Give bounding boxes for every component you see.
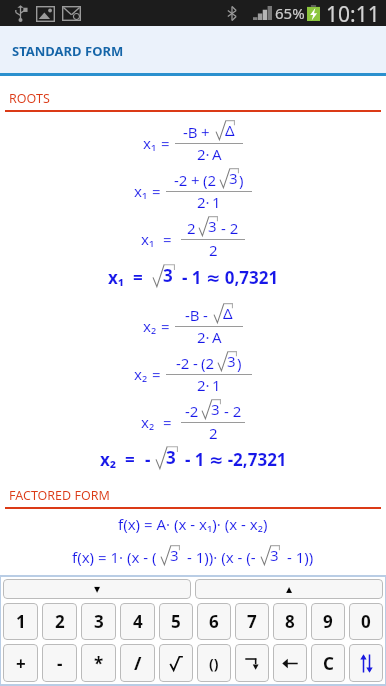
staticText: -2 [174,170,188,190]
staticText: -B [185,305,200,325]
staticText: 8 [285,610,295,633]
staticText: 3 [229,168,238,188]
staticText: 2 [55,610,65,633]
staticText: 3 [163,264,173,287]
button[interactable]: Backspace [273,644,307,682]
staticText: A [212,144,222,164]
button[interactable]: 2 [42,603,77,640]
staticText: f(x) = A· (x - x₁)· (x - x₂) [118,514,268,534]
staticText: STANDARD FORM [12,42,124,60]
button[interactable]: + [3,644,38,682]
staticText: f(x) = 1· (x - ( [72,547,161,567]
button[interactable]: Scroll up [195,579,383,599]
staticText: - [145,448,151,471]
staticText: Δ [225,120,234,140]
button[interactable]: Scroll down [3,579,191,599]
staticText: 3 [170,545,179,565]
staticText: x₂ [134,364,148,384]
button[interactable]: Switch [349,644,383,682]
button[interactable]: 6 [197,603,231,640]
staticText: = [133,266,143,289]
staticText: 0 [361,610,371,633]
staticText: + [191,170,200,190]
button[interactable]: () [197,644,231,682]
staticText: 3 [166,446,176,469]
staticText: 3 [270,545,279,565]
button[interactable]: 9 [311,603,345,640]
staticText: - 1)) [283,547,314,567]
staticText: - [193,353,198,373]
staticText: 2· [197,375,210,395]
button[interactable]: Square root [159,644,193,682]
staticText: - [57,652,63,675]
staticText: 1 [212,375,221,395]
staticText: + [201,122,210,142]
button[interactable]: 1 [3,603,38,640]
staticText: - 1))· (x - (- [183,547,260,567]
staticText: - 2 [224,401,242,421]
staticText: x₂ [143,316,157,336]
button[interactable]: 5 [159,603,193,640]
staticText: 65% [275,3,305,23]
button[interactable]: 8 [273,603,307,640]
staticText: 2 [209,240,218,260]
staticText: ) [239,170,244,190]
button[interactable]: - [42,644,77,682]
staticText: / [134,651,142,676]
staticText: 1 [16,610,26,633]
button[interactable]: STANDARD FORM [0,26,386,73]
staticText: x₁ [143,133,157,153]
staticText: + [16,652,26,675]
staticText: - 1 ≈ 0,7321 [182,266,279,289]
staticText: 3 [211,399,220,419]
button[interactable]: 4 [120,603,155,640]
staticText: ▲ [286,585,293,594]
staticText: 2· [197,327,210,347]
staticText: * [94,652,104,675]
staticText: Δ [223,303,232,323]
staticText: 2· [197,144,210,164]
button[interactable]: Enter [235,644,269,682]
staticText: = [161,133,170,153]
staticText: = [163,229,172,249]
staticText: 3 [94,610,104,633]
staticText: x₂ [141,412,155,432]
staticText: 10:11 [326,0,380,26]
staticText: - 1 ≈ -2,7321 [185,448,287,471]
staticText: C [323,652,334,675]
staticText: (2 [203,170,217,190]
staticText: x₁ [108,266,125,289]
staticText: 9 [323,610,333,633]
staticText: 6 [209,610,219,633]
button[interactable]: 0 [349,603,383,640]
staticText: 3 [208,216,217,236]
button[interactable]: 3 [81,603,116,640]
staticText: 5 [171,610,181,633]
staticText: 2 [209,423,218,443]
staticText: 2 [187,218,196,238]
staticText: - [203,305,208,325]
staticText: = [163,412,172,432]
staticText: x₁ [141,229,155,249]
button[interactable]: C [311,644,345,682]
staticText: (2 [201,353,215,373]
staticText: 4 [133,610,143,633]
staticText: 7 [247,610,257,633]
staticText: -2 [185,401,199,421]
staticText: x₂ [100,448,117,471]
staticText: -B [183,122,198,142]
staticText: = [125,448,135,471]
staticText: A [212,327,222,347]
staticText: 1 [212,192,221,212]
staticText: = [152,364,161,384]
button[interactable]: * [81,644,116,682]
staticText: ROOTS [9,90,50,107]
button[interactable]: / [120,644,155,682]
staticText: - 2 [221,218,239,238]
staticText: ▼ [94,585,101,594]
staticText: FACTORED FORM [9,487,110,504]
staticText: () [209,654,219,673]
staticText: 3 [227,351,236,371]
staticText: x₁ [134,181,148,201]
button[interactable]: 7 [235,603,269,640]
